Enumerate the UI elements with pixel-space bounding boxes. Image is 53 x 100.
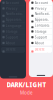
button[interactable]: Notifications [30,11,52,17]
button[interactable]: Storage [30,29,52,34]
button[interactable]: Delete account [30,47,52,52]
staticText: Storage [6,29,18,34]
staticText: Appearance [6,17,22,26]
button[interactable]: Support [1,34,25,40]
staticText: Account [6,0,19,5]
staticText: DARK/LIGHT [6,81,46,89]
button[interactable]: Language [30,23,52,28]
button[interactable]: About [30,40,52,46]
button[interactable]: Account [1,0,25,5]
staticText: Privacy [6,6,18,11]
staticText: Storage [35,29,47,34]
staticText: Appearance [35,17,49,26]
button[interactable]: Appearance [1,17,25,23]
button[interactable]: Appearance [30,17,52,23]
button[interactable]: Language [1,23,25,28]
button[interactable]: Storage [1,29,25,34]
staticText: Support [6,35,18,39]
button[interactable]: Support [30,34,52,40]
staticText: Notifications [35,11,50,20]
button[interactable]: About [1,40,25,46]
staticText: Language [35,23,50,32]
button[interactable]: Notifications [1,11,25,17]
staticText: About [35,41,44,45]
staticText: Mode [20,90,33,96]
staticText: About [6,41,15,45]
button[interactable]: Privacy [30,6,52,11]
staticText: Notifications [6,11,23,20]
button[interactable]: Privacy [1,6,25,11]
staticText: Delete account [6,47,19,56]
staticText: Privacy [35,6,47,11]
button[interactable]: Account [30,0,52,5]
staticText: Account [35,0,48,5]
staticText: Language [6,23,22,28]
staticText: Support [35,35,47,39]
staticText: Delete account [35,47,48,56]
button[interactable]: Delete account [1,47,25,52]
